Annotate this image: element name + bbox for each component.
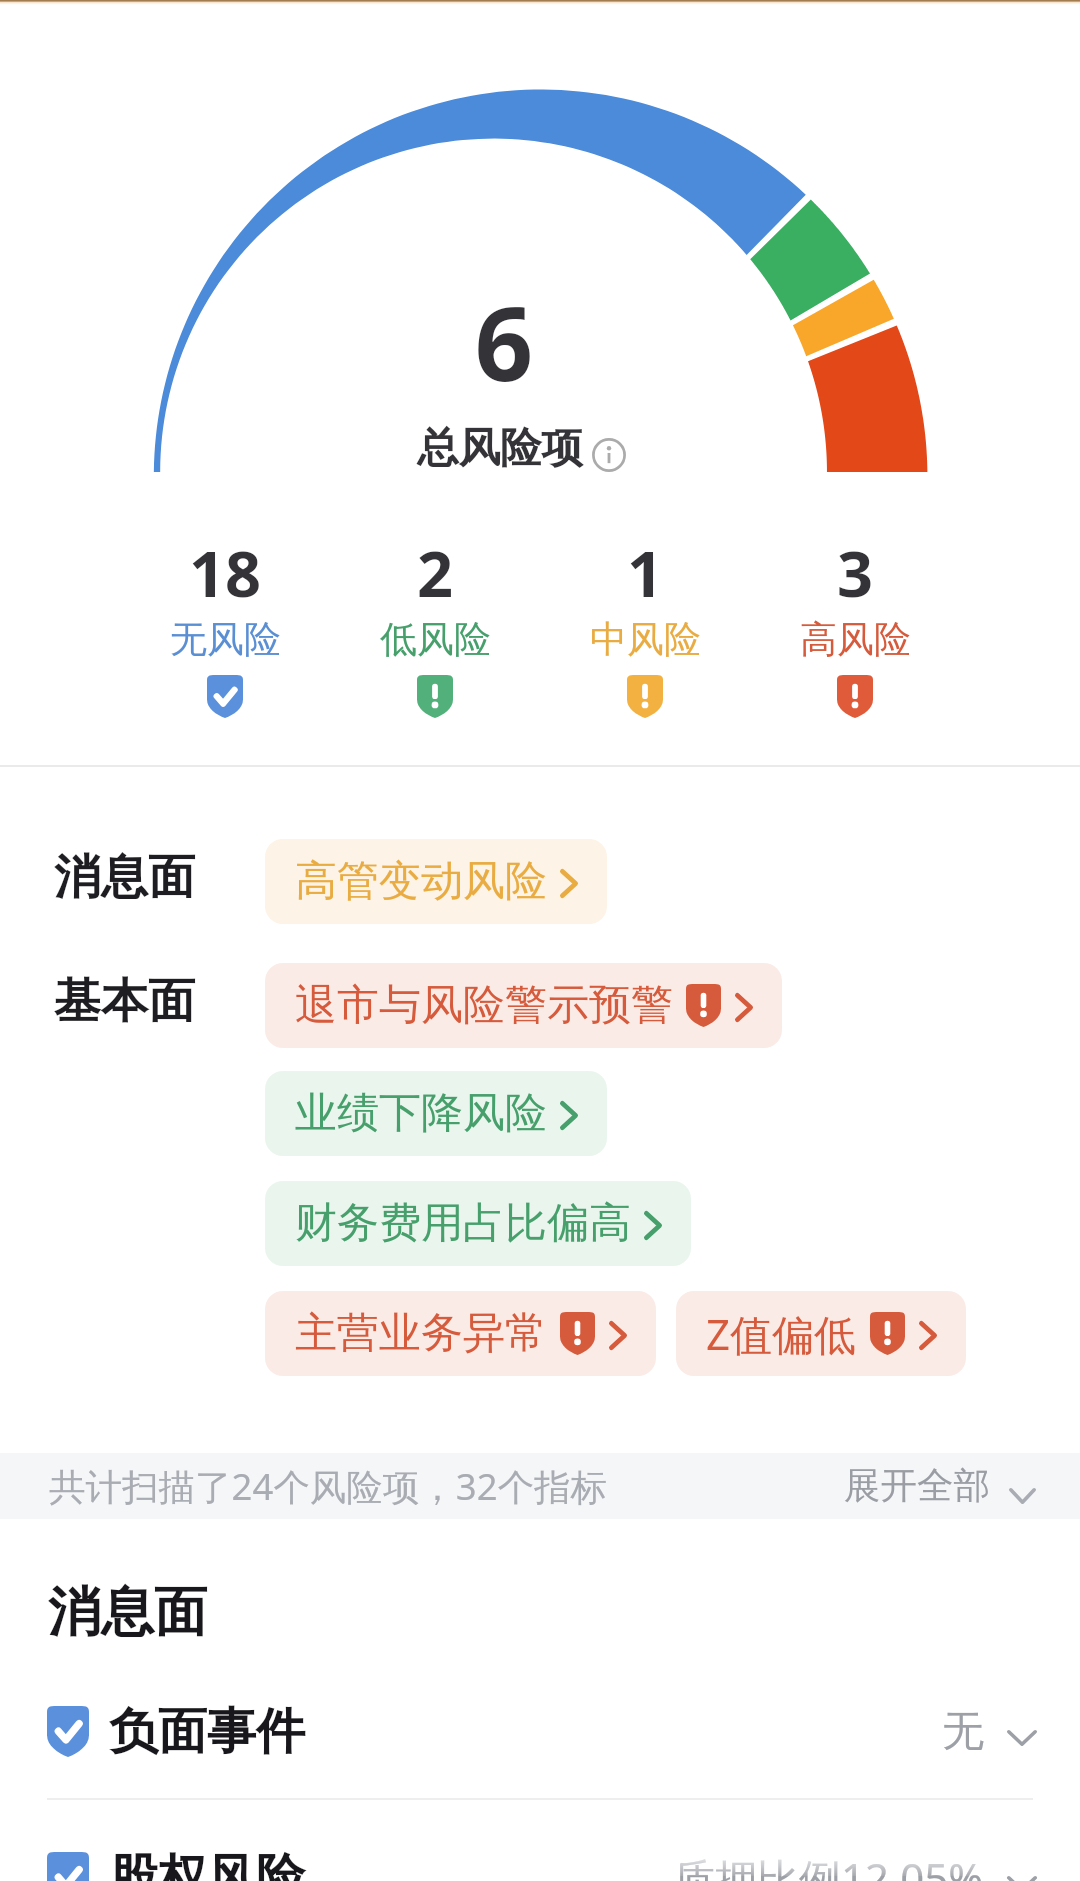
button[interactable]: 18: [120, 530, 330, 718]
staticText: 主营业务异常: [295, 1307, 547, 1360]
button[interactable]: 风险项说明: [592, 438, 626, 472]
staticText: 业绩下降风险: [295, 1087, 547, 1140]
staticText: 消息面: [48, 1579, 207, 1646]
staticText: 股权风险: [109, 1847, 305, 1881]
staticText: 共计扫描了24个风险项，32个指标: [49, 1461, 608, 1511]
staticText: 退市与风险警示预警: [295, 979, 673, 1032]
staticText: 财务费用占比偏高: [295, 1197, 631, 1250]
staticText: 无风险: [170, 616, 281, 663]
button[interactable]: Z值偏低: [676, 1291, 966, 1376]
button[interactable]: 业绩下降风险: [265, 1071, 607, 1156]
button[interactable]: 3: [750, 530, 960, 718]
staticText: 无: [942, 1705, 984, 1758]
staticText: 2: [417, 530, 454, 616]
button[interactable]: 高管变动风险: [265, 839, 607, 924]
button[interactable]: 财务费用占比偏高: [265, 1181, 691, 1266]
staticText: 负面事件: [109, 1701, 305, 1763]
staticText: 消息面: [54, 848, 195, 907]
staticText: 18: [189, 530, 262, 616]
staticText: 基本面: [54, 972, 195, 1031]
button[interactable]: 2: [330, 530, 540, 718]
staticText: 展开全部: [844, 1463, 990, 1509]
staticText: 低风险: [380, 616, 491, 663]
staticText: 3: [837, 530, 874, 616]
staticText: 中风险: [590, 616, 701, 663]
staticText: Z值偏低: [706, 1305, 857, 1362]
staticText: 1: [627, 530, 664, 616]
button[interactable]: 共计扫描了24个风险项，32个指标: [0, 1453, 1080, 1519]
staticText: 质押比例12.05%: [673, 1849, 984, 1881]
staticText: 6: [414, 272, 594, 411]
button[interactable]: 主营业务异常: [265, 1291, 656, 1376]
button[interactable]: 1: [540, 530, 750, 718]
button[interactable]: 股权风险: [0, 1830, 1080, 1881]
staticText: 高管变动风险: [295, 855, 547, 908]
button[interactable]: 负面事件: [0, 1684, 1080, 1779]
staticText: 高风险: [800, 616, 911, 663]
staticText: 总风险项: [417, 422, 583, 474]
button[interactable]: 退市与风险警示预警: [265, 963, 782, 1048]
